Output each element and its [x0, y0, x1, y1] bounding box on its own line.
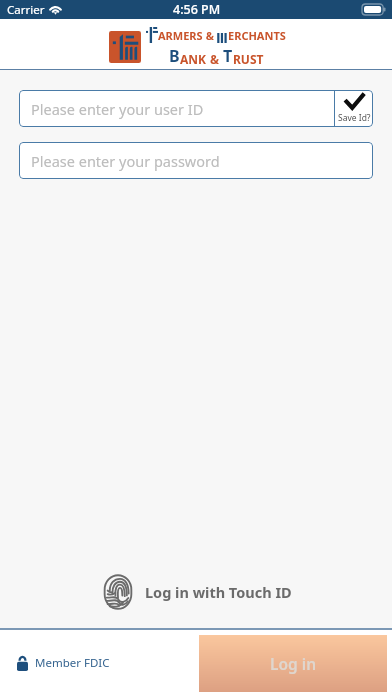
staticText: ARMERS [158, 28, 203, 43]
staticText: Log in [270, 653, 317, 674]
staticText: Save Id? [338, 112, 371, 124]
staticText: T [223, 45, 233, 67]
staticText: ANK [180, 51, 207, 67]
staticText: ERCHANTS [228, 28, 286, 43]
button[interactable]: Please enter your user ID [19, 90, 334, 127]
staticText: RUST [233, 51, 264, 67]
staticText: Please enter your password [31, 151, 220, 171]
button[interactable]: Please enter your password [19, 142, 373, 179]
staticText: & [207, 51, 223, 67]
staticText: Member FDIC [35, 655, 110, 671]
staticText: Log in with Touch ID [145, 582, 292, 602]
staticText: Please enter your user ID [31, 99, 204, 119]
staticText: 4:56 PM [173, 1, 221, 18]
staticText: B [169, 45, 180, 67]
staticText: & [203, 28, 217, 43]
button[interactable]: Save Id [335, 90, 373, 127]
button[interactable]: Member FDIC [17, 655, 110, 671]
staticText: Carrier [7, 2, 45, 18]
button[interactable]: Log in with Touch ID [0, 570, 392, 614]
button[interactable]: Log in [199, 635, 387, 692]
